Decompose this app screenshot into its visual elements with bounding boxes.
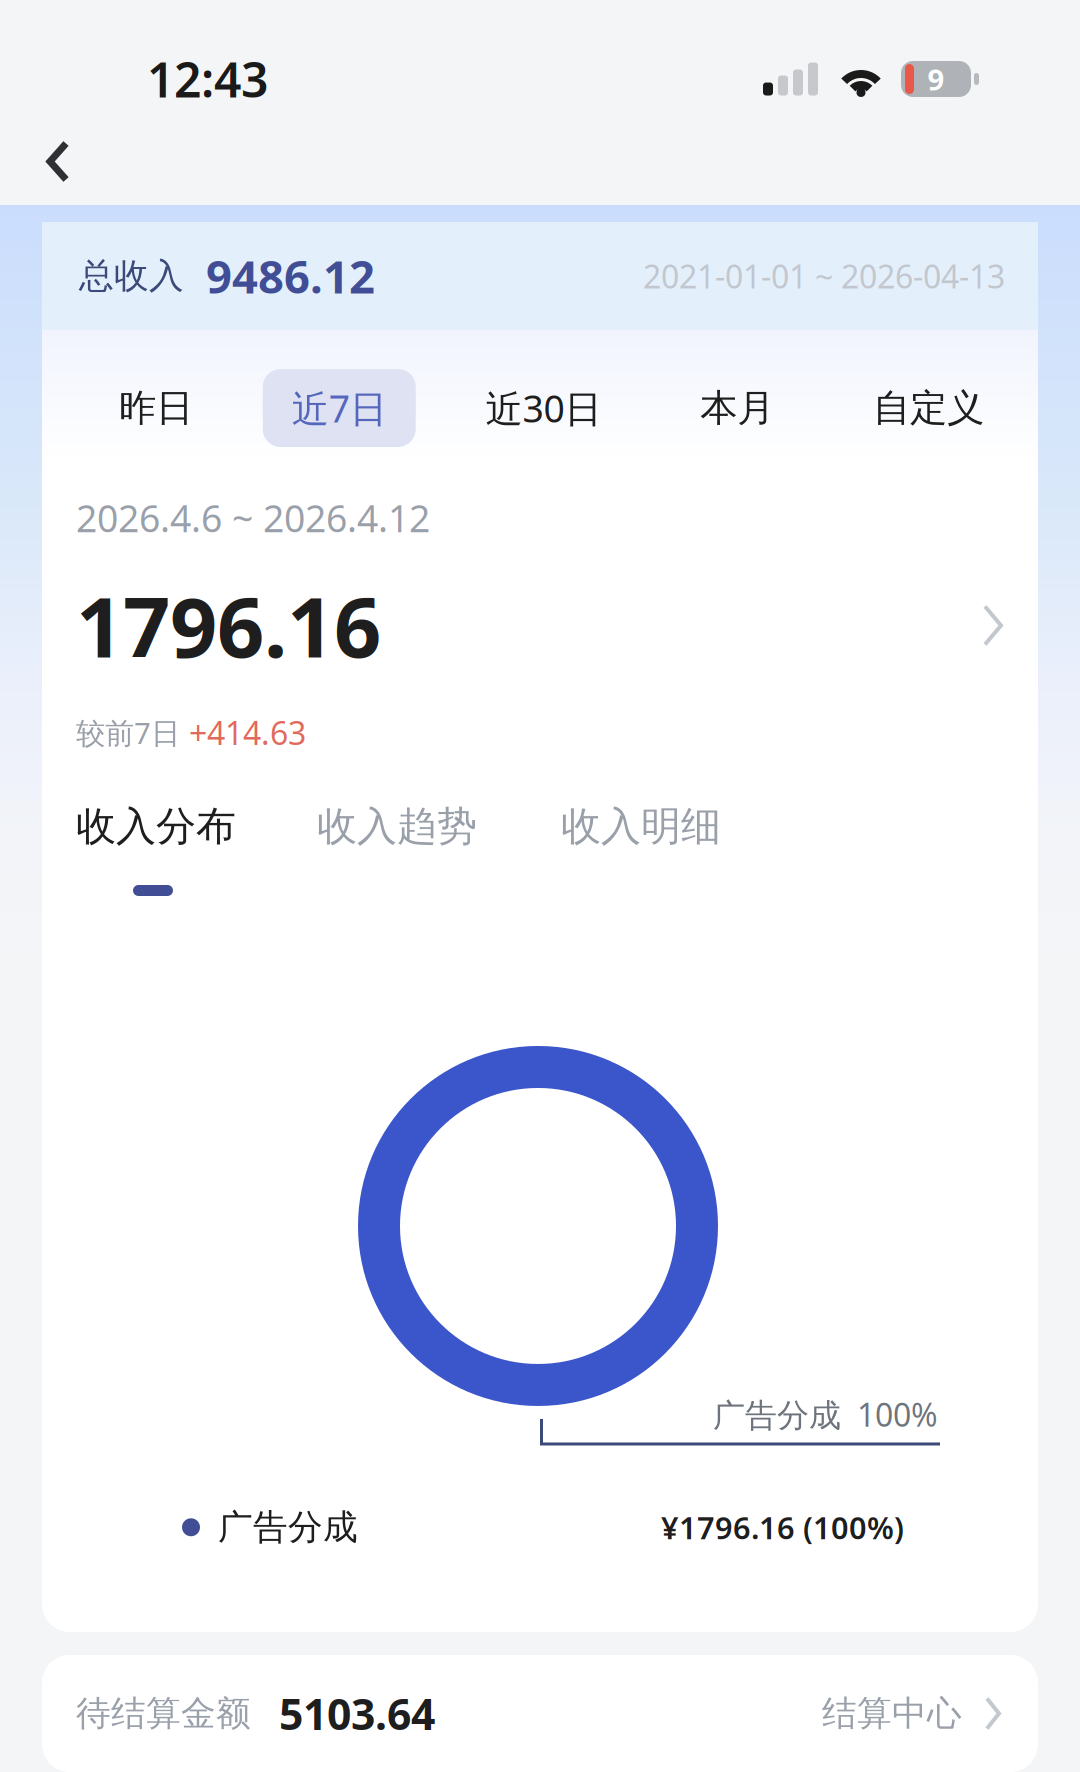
staticText: 9486.12 (206, 246, 375, 306)
staticText: 12:43 (147, 47, 268, 111)
button[interactable]: Details (982, 603, 1038, 647)
staticText: +414.63 (189, 711, 306, 754)
staticText: 收入分布 (76, 802, 236, 851)
staticText: 2021-01-01 ~ 2026-04-13 (643, 255, 1005, 297)
staticText: 结算中心 (822, 1692, 962, 1735)
button[interactable]: 近30日 (456, 369, 630, 447)
staticText: 2026.4.6 ~ 2026.4.12 (76, 493, 430, 543)
button[interactable]: 收入趋势 (317, 802, 477, 851)
staticText: 待结算金额 (76, 1692, 251, 1735)
button[interactable]: Back (0, 120, 98, 202)
staticText: 自定义 (873, 385, 984, 431)
button[interactable]: 待结算金额 (0, 1655, 1080, 1772)
button[interactable]: 本月 (671, 369, 803, 447)
button[interactable]: 昨日 (90, 369, 222, 447)
staticText: 5103.64 (279, 1685, 435, 1742)
staticText: 广告分成 (218, 1506, 358, 1549)
button[interactable]: 自定义 (844, 369, 1013, 447)
staticText: 收入趋势 (317, 802, 477, 851)
staticText: 总收入 (79, 255, 184, 297)
staticText: 1796.16 (76, 571, 381, 680)
staticText: 收入明细 (561, 802, 721, 851)
staticText: ¥1796.16 (100%) (661, 1507, 904, 1548)
staticText: 较前7日 (76, 713, 189, 752)
staticText: 昨日 (119, 385, 193, 431)
staticText: 近7日 (292, 383, 387, 433)
button[interactable]: 近7日 (263, 369, 416, 447)
staticText: 本月 (700, 385, 774, 431)
staticText: 近30日 (485, 383, 601, 433)
staticText: 9 (927, 59, 944, 98)
staticText: 广告分成 100% (713, 1393, 938, 1435)
button[interactable]: 收入明细 (561, 802, 721, 851)
button[interactable]: 收入分布 (76, 802, 236, 896)
